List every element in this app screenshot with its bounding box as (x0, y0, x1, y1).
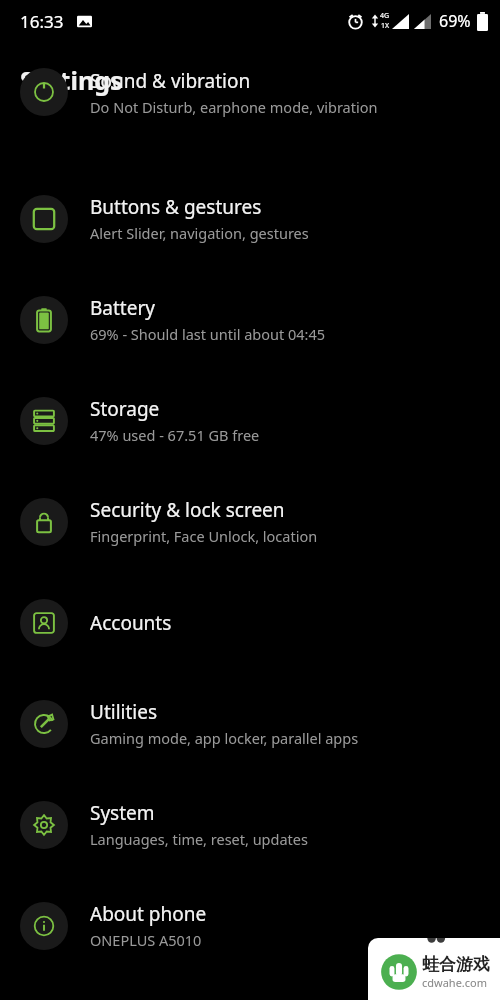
staticText: Languages, time, reset, updates (90, 829, 308, 849)
staticText: cdwahe.com (422, 975, 488, 990)
staticText: Do Not Disturb, earphone mode, vibration (90, 97, 378, 117)
button[interactable]: System (0, 774, 500, 875)
staticText: System (90, 800, 155, 826)
staticText: Settings (20, 63, 123, 97)
button[interactable]: About phone (0, 875, 500, 976)
button[interactable]: Buttons & gestures (0, 168, 500, 269)
staticText: 69% - Should last until about 04:45 (90, 324, 326, 344)
staticText: Utilities (90, 699, 158, 725)
button[interactable]: Accounts (0, 572, 500, 673)
button[interactable]: Utilities (0, 673, 500, 774)
staticText: 16:33 (20, 10, 64, 33)
button[interactable]: Security & lock screen (0, 471, 500, 572)
staticText: About phone (90, 901, 207, 927)
staticText: 1X (381, 21, 390, 31)
staticText: ONEPLUS A5010 (90, 930, 202, 950)
staticText: Buttons & gestures (90, 194, 262, 220)
staticText: Security & lock screen (90, 497, 285, 523)
staticText: 47% used - 67.51 GB free (90, 425, 260, 445)
staticText: 蛙合游戏 (422, 954, 490, 975)
staticText: Fingerprint, Face Unlock, location (90, 526, 318, 546)
staticText: 4G (380, 11, 390, 21)
staticText: Gaming mode, app locker, parallel apps (90, 728, 359, 748)
staticText: Alert Slider, navigation, gestures (90, 223, 309, 243)
staticText: Accounts (90, 610, 172, 636)
staticText: Battery (90, 295, 155, 321)
staticText: 69% (439, 10, 471, 32)
staticText: Storage (90, 396, 160, 422)
staticText: Sound & vibration (90, 68, 251, 94)
button[interactable]: Battery (0, 269, 500, 370)
button[interactable]: Storage (0, 370, 500, 471)
